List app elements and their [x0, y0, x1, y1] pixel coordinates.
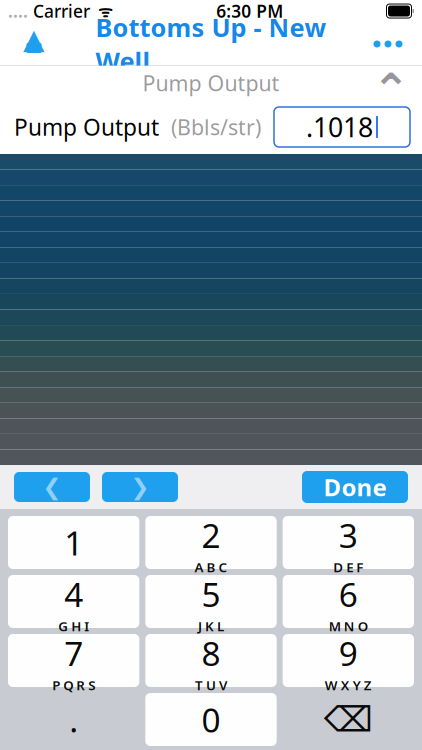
- staticText: 8: [201, 631, 220, 675]
- staticText: .1018: [306, 109, 373, 145]
- staticText: 9: [339, 631, 358, 675]
- staticText: Pump Output: [14, 112, 159, 142]
- staticText: W X Y Z: [325, 676, 372, 694]
- button[interactable]: 0: [145, 693, 277, 746]
- staticText: 2: [201, 513, 220, 557]
- button[interactable]: 9: [283, 634, 414, 687]
- staticText: ⌫: [324, 700, 373, 739]
- staticText: ▲: [23, 23, 45, 55]
- button[interactable]: 8: [145, 634, 277, 687]
- button[interactable]: Pump Output value: [274, 107, 410, 147]
- staticText: M N O: [329, 617, 368, 635]
- button[interactable]: Collapse section: [368, 66, 414, 100]
- staticText: 5: [201, 572, 220, 616]
- staticText: .: [69, 697, 78, 742]
- staticText: 7: [64, 631, 83, 675]
- button[interactable]: 6: [283, 575, 414, 628]
- staticText: Carrier: [28, 0, 90, 22]
- button[interactable]: 4: [8, 575, 139, 628]
- staticText: 6: [339, 572, 358, 616]
- button[interactable]: 3: [283, 516, 414, 569]
- staticText: ❮: [42, 474, 61, 500]
- staticText: G H I: [58, 617, 89, 635]
- staticText: 0: [201, 697, 220, 742]
- button[interactable]: More options: [362, 25, 414, 63]
- staticText: 1: [64, 520, 83, 565]
- staticText: Bottoms Up - New Well: [95, 10, 326, 78]
- staticText: ᯤ: [90, 0, 113, 22]
- staticText: J K L: [198, 617, 224, 635]
- button[interactable]: Done: [302, 471, 408, 503]
- staticText: Pump Output: [142, 69, 279, 97]
- button[interactable]: 1: [8, 516, 139, 569]
- button[interactable]: Previous field: [14, 472, 90, 502]
- staticText: 4: [64, 572, 83, 616]
- button[interactable]: Home: [8, 25, 60, 63]
- staticText: 3: [339, 513, 358, 557]
- button[interactable]: 5: [145, 575, 277, 628]
- staticText: ⌃: [372, 64, 410, 116]
- staticText: 6:30 PM: [216, 0, 283, 22]
- button[interactable]: .: [8, 693, 139, 746]
- button[interactable]: Delete: [283, 693, 414, 746]
- staticText: D E F: [333, 558, 363, 576]
- button[interactable]: Next field: [102, 472, 178, 502]
- staticText: A B C: [194, 558, 227, 576]
- staticText: P Q R S: [52, 676, 95, 694]
- button[interactable]: 2: [145, 516, 277, 569]
- staticText: ❯: [130, 474, 149, 500]
- button[interactable]: 7: [8, 634, 139, 687]
- staticText: ....: [8, 0, 28, 22]
- staticText: (Bbls/str): [159, 113, 261, 141]
- staticText: Done: [323, 471, 386, 503]
- staticText: T U V: [195, 676, 227, 694]
